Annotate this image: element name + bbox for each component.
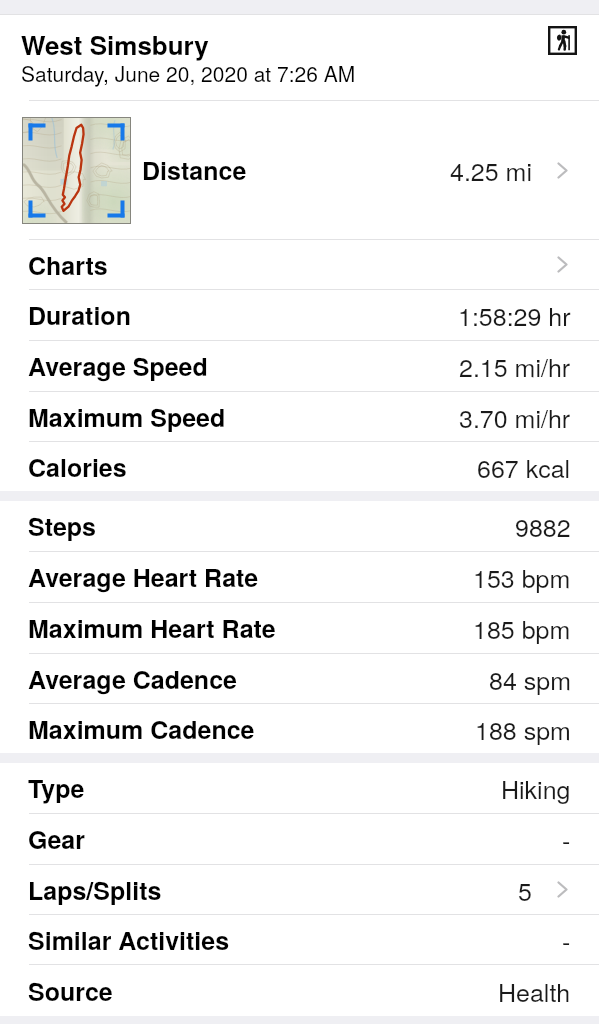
button[interactable]: Similar Activities <box>0 915 599 964</box>
staticText: Average Speed <box>28 348 208 384</box>
button[interactable]: Calories <box>0 442 599 491</box>
staticText: Saturday, June 20, 2020 at 7:26 AM <box>21 58 356 88</box>
staticText: - <box>562 922 571 958</box>
staticText: Charts <box>28 247 108 283</box>
staticText: Source <box>28 973 113 1009</box>
button[interactable]: Activity type: Hiking <box>548 26 577 55</box>
staticText: 5 <box>518 872 532 908</box>
button[interactable]: Gear <box>0 814 599 864</box>
button[interactable]: Source <box>0 965 599 1016</box>
staticText: 84 spm <box>489 661 571 697</box>
staticText: 4.25 mi <box>450 152 532 188</box>
staticText: Health <box>498 973 571 1009</box>
staticText: - <box>562 821 571 857</box>
staticText: Duration <box>28 297 131 333</box>
staticText: Maximum Speed <box>28 399 226 435</box>
staticText: Maximum Cadence <box>28 711 255 747</box>
button[interactable]: Average Cadence <box>0 654 599 703</box>
staticText: West Simsbury <box>21 26 209 63</box>
staticText: 1:58:29 hr <box>458 297 571 333</box>
staticText: Laps/Splits <box>28 872 162 908</box>
button[interactable]: Maximum Speed <box>0 392 599 441</box>
button[interactable]: Duration <box>0 290 599 340</box>
staticText: 667 kcal <box>477 449 571 485</box>
staticText: Type <box>28 770 85 806</box>
staticText: 9882 <box>515 508 571 544</box>
staticText: Distance <box>142 152 247 188</box>
staticText: Calories <box>28 449 127 485</box>
staticText: Hiking <box>501 770 571 806</box>
staticText: 153 bpm <box>473 559 571 595</box>
button[interactable]: Laps/Splits <box>0 865 599 914</box>
button[interactable]: Average Speed <box>0 341 599 391</box>
staticText: 2.15 mi/hr <box>459 348 571 384</box>
staticText: Average Cadence <box>28 661 237 697</box>
staticText: Average Heart Rate <box>28 559 259 595</box>
button[interactable]: Steps <box>0 501 599 551</box>
staticText: Maximum Heart Rate <box>28 610 276 646</box>
staticText: Gear <box>28 821 85 857</box>
button[interactable]: Charts <box>0 240 599 289</box>
button[interactable]: Average Heart Rate <box>0 552 599 602</box>
button[interactable]: Distance <box>0 101 599 239</box>
staticText: 3.70 mi/hr <box>459 399 571 435</box>
staticText: 188 spm <box>475 711 571 747</box>
staticText: 185 bpm <box>473 610 571 646</box>
staticText: Steps <box>28 508 96 544</box>
staticText: Similar Activities <box>28 922 230 958</box>
button[interactable]: Maximum Heart Rate <box>0 603 599 653</box>
button[interactable]: Maximum Cadence <box>0 704 599 753</box>
button[interactable]: Type <box>0 763 599 813</box>
